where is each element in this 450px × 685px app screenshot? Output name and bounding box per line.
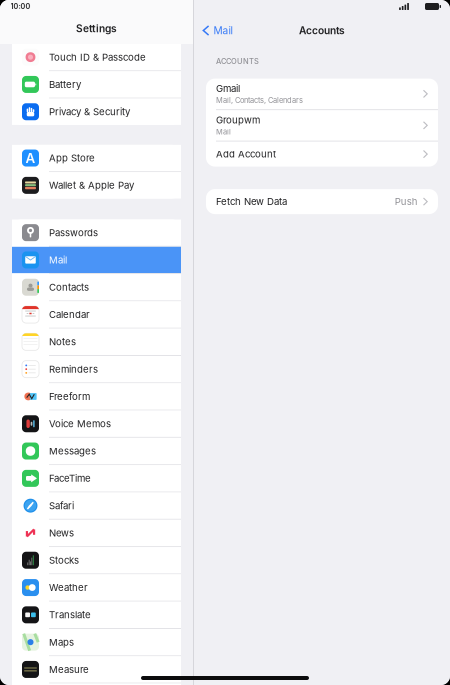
button[interactable]: Add Account xyxy=(206,142,438,167)
staticText: Mail xyxy=(214,24,233,37)
button[interactable]: Groupwm xyxy=(206,110,438,141)
button[interactable]: A xyxy=(12,145,181,171)
button[interactable]: Gmail xyxy=(206,79,438,109)
staticText: Contacts xyxy=(49,281,89,293)
staticText: Mail, Contacts, Calendars xyxy=(216,96,303,105)
staticText: Settings xyxy=(76,22,117,35)
button[interactable]: Wallet & Apple Pay xyxy=(12,172,181,198)
button[interactable]: Calendar xyxy=(12,301,181,328)
staticText: 10:00 xyxy=(11,2,31,11)
button[interactable]: Passwords xyxy=(12,219,181,246)
button[interactable]: Voice Memos xyxy=(12,411,181,437)
button[interactable]: Notes xyxy=(12,329,181,355)
button[interactable]: Mail xyxy=(200,22,235,39)
staticText: Freeform xyxy=(49,391,90,402)
staticText: News xyxy=(49,527,74,539)
staticText: Safari xyxy=(49,500,74,511)
staticText: Weather xyxy=(49,582,88,593)
button[interactable]: Privacy & Security xyxy=(12,99,181,125)
staticText: Privacy & Security xyxy=(49,106,130,117)
staticText: Translate xyxy=(49,609,91,621)
staticText: Stocks xyxy=(49,554,79,566)
button[interactable]: Translate xyxy=(12,602,181,628)
button[interactable]: Touch ID & Passcode xyxy=(12,44,181,70)
staticText: Gmail xyxy=(216,83,240,94)
button[interactable]: Reminders xyxy=(12,356,181,382)
button[interactable]: Mail xyxy=(12,247,181,273)
button[interactable]: News xyxy=(12,520,181,546)
staticText: Notes xyxy=(49,336,76,348)
button[interactable]: Weather xyxy=(12,574,181,601)
staticText: Touch ID & Passcode xyxy=(49,51,146,63)
staticText: Fetch New Data xyxy=(216,196,287,207)
button[interactable]: Battery xyxy=(12,71,181,98)
staticText: Add Account xyxy=(216,148,276,160)
button[interactable]: Stocks xyxy=(12,547,181,573)
button[interactable]: Measure xyxy=(12,656,181,683)
staticText: FaceTime xyxy=(49,472,91,484)
staticText: Mail xyxy=(216,127,231,136)
button[interactable]: FaceTime xyxy=(12,465,181,491)
staticText: Push xyxy=(395,196,418,207)
staticText: Messages xyxy=(49,445,96,457)
staticText: Measure xyxy=(49,664,89,675)
button[interactable]: Contacts xyxy=(12,274,181,300)
staticText: Reminders xyxy=(49,363,98,375)
staticText: Battery xyxy=(49,79,81,90)
button[interactable]: Maps xyxy=(12,629,181,655)
staticText: Maps xyxy=(49,636,74,648)
button[interactable]: Messages xyxy=(12,438,181,464)
staticText: App Store xyxy=(49,152,95,164)
staticText: Voice Memos xyxy=(49,418,111,429)
staticText: Accounts xyxy=(299,24,345,37)
staticText: Mail xyxy=(49,254,67,266)
button[interactable]: Freeform xyxy=(12,383,181,410)
staticText: Wallet & Apple Pay xyxy=(49,179,134,191)
staticText: Passwords xyxy=(49,227,98,238)
button[interactable]: Fetch New Data xyxy=(206,189,438,214)
staticText: ACCOUNTS xyxy=(216,57,259,66)
button[interactable]: Safari xyxy=(12,492,181,519)
staticText: Calendar xyxy=(49,309,90,320)
staticText: A xyxy=(25,150,35,166)
staticText: Groupwm xyxy=(216,114,260,126)
